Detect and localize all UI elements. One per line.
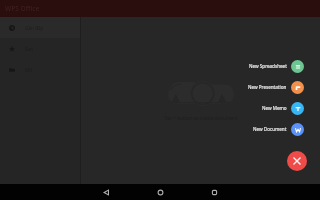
- button[interactable]: Recent apps: [204, 184, 224, 200]
- button[interactable]: New Document: [160, 121, 304, 137]
- button[interactable]: Close create menu: [287, 151, 307, 171]
- staticText: New Spreadsheet: [249, 63, 287, 69]
- staticText: New Document: [253, 126, 287, 132]
- button[interactable]: New Spreadsheet: [160, 58, 304, 74]
- button[interactable]: Back: [96, 184, 116, 200]
- button[interactable]: New Presentation: [160, 79, 304, 95]
- staticText: New Presentation: [248, 84, 287, 90]
- button[interactable]: Home: [150, 184, 170, 200]
- staticText: WPS Office: [5, 4, 40, 13]
- button[interactable]: New Memo: [160, 100, 304, 116]
- staticText: New Memo: [262, 105, 287, 111]
